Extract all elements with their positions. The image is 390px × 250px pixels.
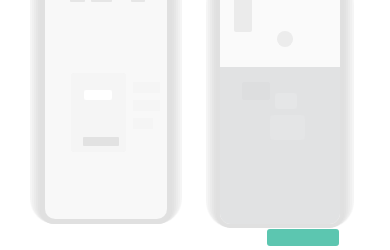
button[interactable]: Get started: [267, 229, 339, 246]
button[interactable]: [71, 73, 126, 152]
